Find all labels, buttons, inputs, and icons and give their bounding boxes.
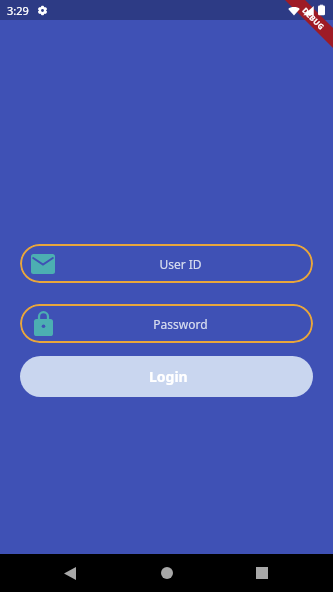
other: Settings <box>37 5 48 16</box>
button[interactable]: Recent apps <box>241 554 283 592</box>
button[interactable]: User ID <box>20 244 313 283</box>
staticText: User ID <box>159 256 202 272</box>
staticText: Login <box>149 367 188 386</box>
button[interactable]: Password <box>20 304 313 343</box>
button[interactable]: Login <box>20 356 313 397</box>
button[interactable]: Home <box>146 554 188 592</box>
staticText: 3:29 <box>7 3 29 18</box>
staticText: Password <box>153 316 208 332</box>
staticText: DEBUG <box>300 5 327 32</box>
button[interactable]: Back <box>49 554 91 592</box>
